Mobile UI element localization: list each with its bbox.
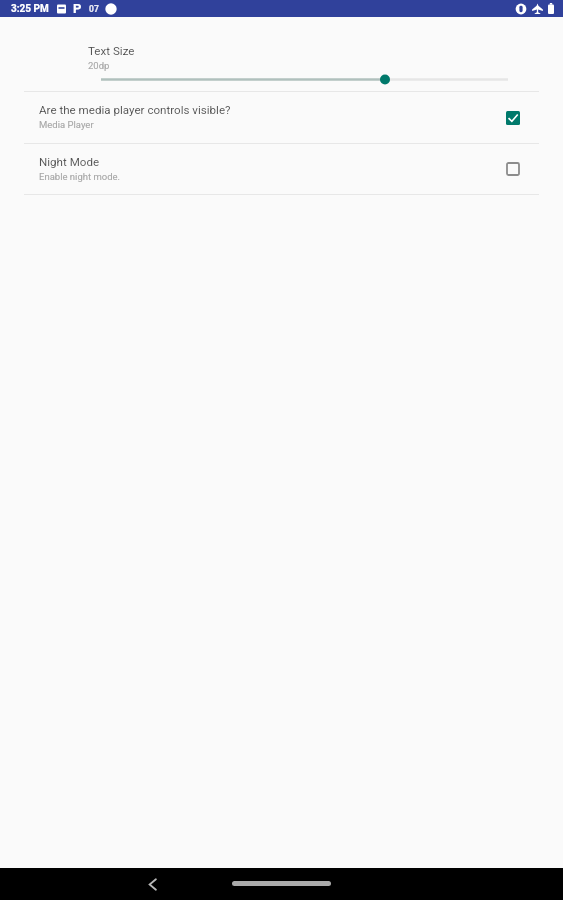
- button[interactable]: Text size slider: [0, 71, 563, 87]
- button[interactable]: Text Size: [0, 24, 563, 68]
- button[interactable]: Are the media player controls visible?: [0, 92, 563, 143]
- staticText: P: [73, 1, 82, 16]
- button[interactable]: Night Mode: [0, 144, 563, 194]
- button[interactable]: Unchecked: [501, 157, 525, 181]
- button[interactable]: Checked: [501, 106, 525, 130]
- staticText: 20dp: [88, 60, 110, 71]
- staticText: Text Size: [88, 44, 135, 58]
- staticText: Media Player: [39, 119, 94, 130]
- staticText: 3:25 PM: [11, 3, 49, 15]
- button[interactable]: Home: [232, 881, 331, 886]
- button[interactable]: Back: [138, 870, 166, 898]
- staticText: Night Mode: [39, 155, 100, 169]
- staticText: Are the media player controls visible?: [39, 103, 231, 117]
- staticText: Enable night mode.: [39, 171, 121, 182]
- staticText: 07: [89, 4, 99, 14]
